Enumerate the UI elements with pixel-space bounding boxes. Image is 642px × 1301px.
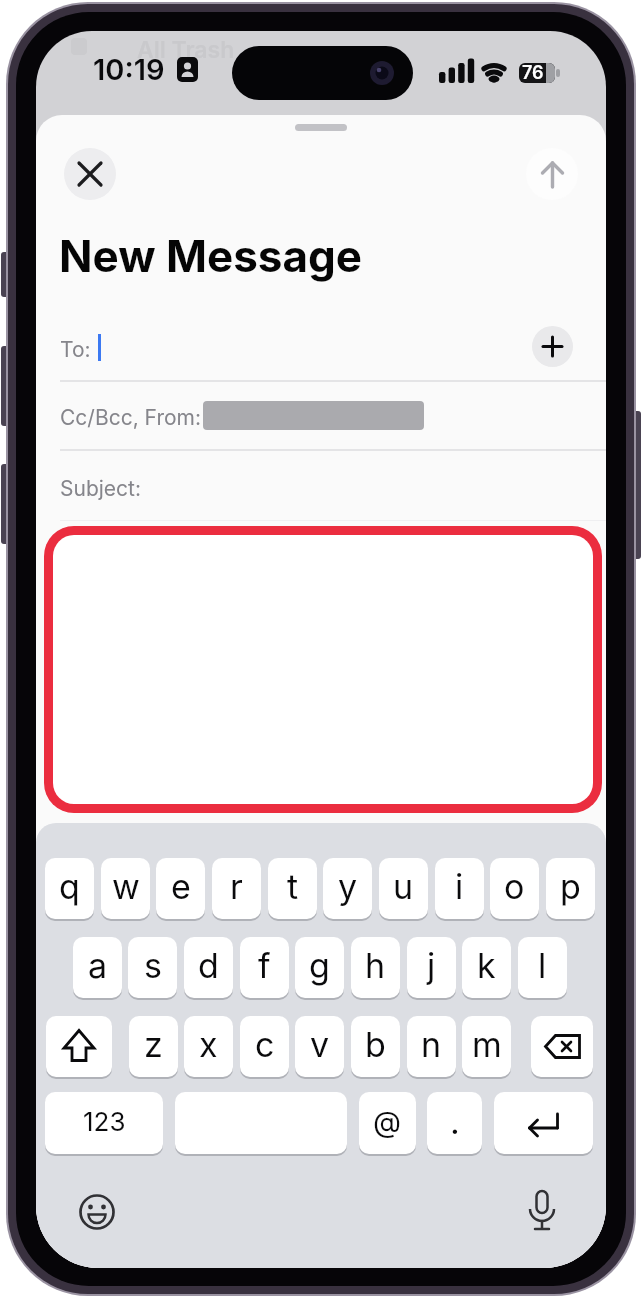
- button[interactable]: i: [435, 858, 484, 919]
- button[interactable]: y: [323, 858, 372, 919]
- staticText: r: [230, 866, 243, 907]
- button[interactable]: Cc/Bcc, From:: [36, 381, 606, 449]
- staticText: a: [88, 945, 108, 986]
- staticText: e: [171, 866, 191, 907]
- staticText: All Trash: [137, 36, 235, 64]
- button[interactable]: x: [184, 1016, 233, 1077]
- staticText: k: [477, 945, 496, 986]
- button[interactable]: u: [379, 858, 428, 919]
- staticText: p: [560, 866, 581, 907]
- button[interactable]: f: [240, 937, 289, 998]
- staticText: m: [472, 1024, 502, 1065]
- button[interactable]: s: [128, 937, 177, 998]
- button[interactable]: q: [45, 858, 94, 919]
- staticText: t: [287, 866, 299, 907]
- staticText: i: [455, 866, 464, 907]
- button[interactable]: 123: [45, 1092, 163, 1154]
- button[interactable]: m: [462, 1016, 511, 1077]
- staticText: 123: [83, 1106, 126, 1137]
- staticText: h: [365, 945, 386, 986]
- staticText: f: [258, 945, 271, 986]
- staticText: 76: [522, 63, 544, 82]
- staticText: z: [144, 1024, 163, 1065]
- staticText: q: [59, 866, 80, 907]
- button[interactable]: k: [462, 937, 511, 998]
- button[interactable]: To:: [36, 315, 606, 380]
- staticText: o: [504, 866, 525, 907]
- button[interactable]: [175, 1092, 347, 1154]
- button[interactable]: [44, 526, 602, 813]
- staticText: y: [338, 866, 358, 907]
- button[interactable]: h: [351, 937, 400, 998]
- button[interactable]: a: [73, 937, 122, 998]
- button[interactable]: z: [129, 1016, 178, 1077]
- staticText: n: [421, 1024, 442, 1065]
- staticText: c: [255, 1024, 275, 1065]
- staticText: Cc/Bcc, From:: [60, 405, 201, 430]
- button[interactable]: [64, 148, 116, 200]
- button[interactable]: [46, 1016, 112, 1077]
- button[interactable]: j: [407, 937, 456, 998]
- staticText: @: [373, 1104, 402, 1139]
- button[interactable]: d: [184, 937, 233, 998]
- button[interactable]: n: [407, 1016, 456, 1077]
- staticText: w: [112, 866, 140, 907]
- button[interactable]: [79, 1194, 115, 1230]
- button[interactable]: e: [156, 858, 205, 919]
- button[interactable]: v: [295, 1016, 344, 1077]
- staticText: l: [538, 945, 547, 986]
- button[interactable]: b: [351, 1016, 400, 1077]
- staticText: j: [427, 945, 436, 986]
- button[interactable]: .: [427, 1092, 482, 1154]
- button[interactable]: Subject:: [36, 450, 606, 520]
- button[interactable]: g: [295, 937, 344, 998]
- button[interactable]: [494, 1092, 593, 1154]
- staticText: x: [199, 1024, 218, 1065]
- button[interactable]: l: [518, 937, 567, 998]
- button[interactable]: c: [240, 1016, 289, 1077]
- staticText: s: [144, 945, 162, 986]
- button[interactable]: o: [490, 858, 539, 919]
- button[interactable]: p: [546, 858, 595, 919]
- button[interactable]: @: [359, 1092, 416, 1154]
- staticText: u: [393, 866, 414, 907]
- staticText: g: [309, 945, 330, 986]
- staticText: To:: [60, 337, 91, 362]
- staticText: 10:19: [93, 52, 165, 87]
- button[interactable]: [525, 1189, 559, 1235]
- staticText: Subject:: [60, 476, 141, 501]
- staticText: New Message: [59, 229, 363, 282]
- button[interactable]: t: [268, 858, 317, 919]
- button[interactable]: r: [212, 858, 261, 919]
- staticText: .: [450, 1101, 460, 1142]
- staticText: v: [310, 1024, 330, 1065]
- button[interactable]: [526, 148, 578, 200]
- staticText: d: [198, 945, 219, 986]
- button[interactable]: [531, 1016, 593, 1077]
- staticText: b: [365, 1024, 386, 1065]
- button[interactable]: [532, 326, 573, 367]
- button[interactable]: w: [101, 858, 150, 919]
